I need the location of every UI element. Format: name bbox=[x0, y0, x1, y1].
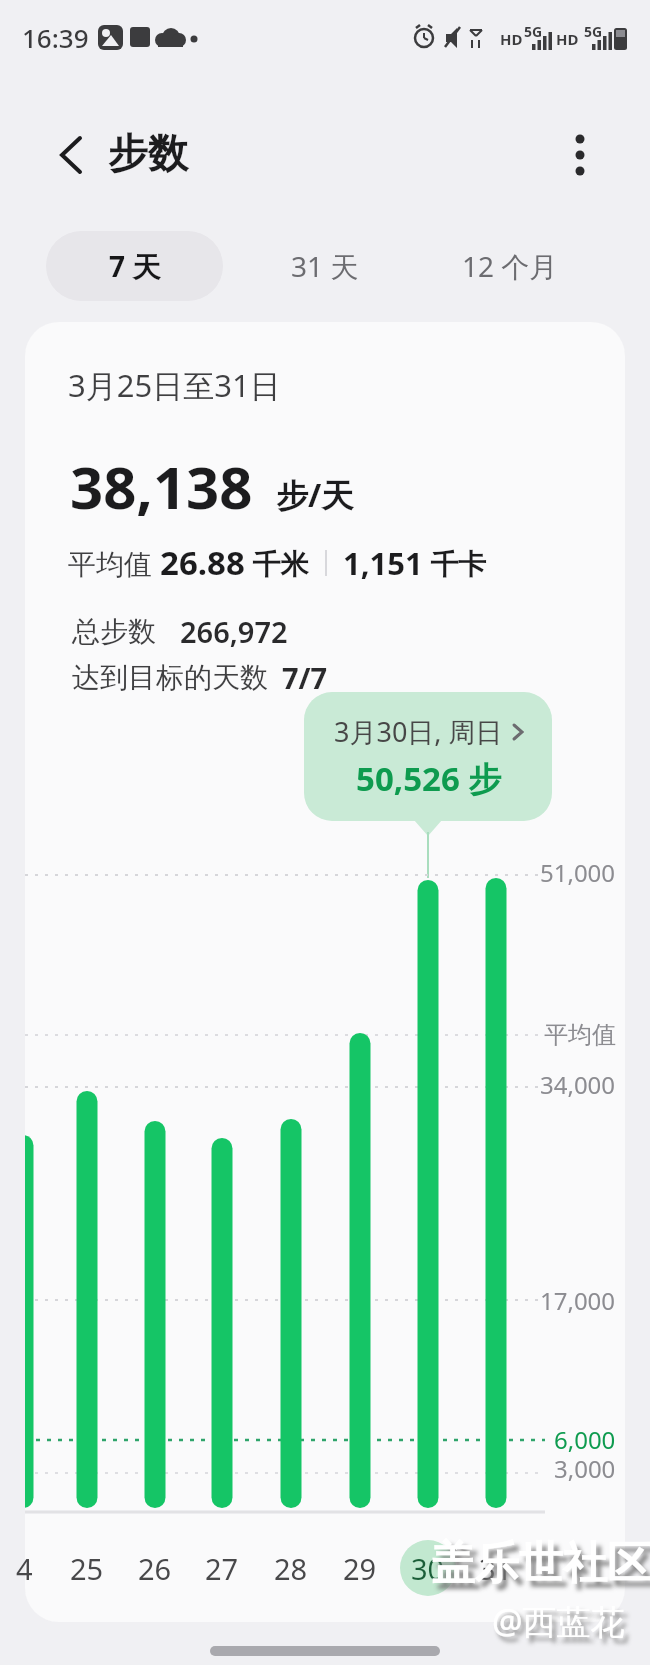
staticText: 4 bbox=[16, 1549, 33, 1588]
staticText: 千卡 bbox=[423, 544, 487, 582]
staticText: @西蓝花 bbox=[492, 1598, 625, 1644]
staticText: 盖乐世社区 bbox=[431, 1536, 650, 1591]
staticText: 5G bbox=[524, 22, 543, 41]
staticText: 步/天 bbox=[276, 473, 354, 517]
staticText: 12 个月 bbox=[462, 247, 558, 285]
staticText: 30 bbox=[411, 1549, 445, 1588]
button[interactable] bbox=[558, 125, 602, 185]
staticText: HD bbox=[556, 29, 579, 49]
staticText: 5G bbox=[584, 22, 603, 41]
staticText: 27 bbox=[205, 1549, 239, 1588]
button[interactable]: 12 个月 bbox=[430, 231, 590, 301]
staticText: 千米 bbox=[245, 544, 309, 582]
staticText: 平均值 bbox=[544, 1020, 616, 1050]
staticText: 1,151 bbox=[343, 542, 423, 584]
button[interactable] bbox=[40, 125, 100, 185]
staticText: 26 bbox=[138, 1549, 172, 1588]
staticText: 3月25日至31日 bbox=[68, 364, 281, 406]
staticText: 总步数 bbox=[72, 614, 156, 649]
button[interactable]: 31 天 bbox=[265, 231, 385, 301]
button[interactable]: 7 天 bbox=[46, 231, 223, 301]
staticText: 34,000 bbox=[540, 1068, 616, 1101]
staticText: 51,000 bbox=[540, 856, 616, 889]
staticText: 31 天 bbox=[291, 247, 359, 285]
staticText: 3月30日, 周日 bbox=[334, 713, 503, 750]
staticText: 步数 bbox=[108, 128, 188, 178]
staticText: 26.88 bbox=[160, 540, 245, 585]
staticText: 28 bbox=[274, 1549, 308, 1588]
staticText: HD bbox=[500, 29, 523, 49]
staticText: 平均值 bbox=[68, 544, 160, 582]
staticText: 17,000 bbox=[540, 1284, 616, 1317]
staticText: 25 bbox=[70, 1549, 104, 1588]
staticText: 266,972 bbox=[180, 612, 288, 651]
staticText: 29 bbox=[343, 1549, 377, 1588]
staticText: 7 天 bbox=[109, 247, 161, 285]
button[interactable]: 3月30日, 周日 bbox=[304, 692, 552, 821]
staticText: 达到目标的天数 bbox=[72, 660, 268, 695]
staticText: 7/7 bbox=[282, 658, 328, 697]
staticText: 16:39 bbox=[22, 20, 89, 55]
staticText: 38,138 bbox=[70, 447, 253, 526]
staticText: 3,000 bbox=[554, 1452, 616, 1485]
staticText: 6,000 bbox=[554, 1423, 616, 1456]
staticText: 50,526 步 bbox=[356, 756, 502, 801]
staticText: 31 bbox=[479, 1549, 513, 1588]
